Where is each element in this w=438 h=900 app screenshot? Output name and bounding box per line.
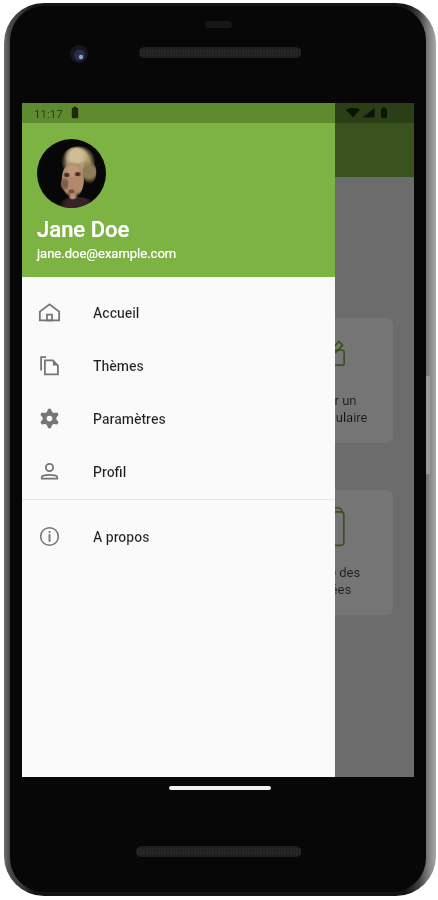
button[interactable]: A propos <box>22 510 335 563</box>
staticText: A propos <box>93 529 150 545</box>
staticText: 11:17 <box>34 107 63 120</box>
staticText: Paramètres <box>93 411 166 427</box>
button[interactable]: Thèmes <box>22 339 335 392</box>
staticText: Accueil <box>93 305 140 321</box>
button[interactable]: Paramètres <box>22 392 335 445</box>
button[interactable]: Accueil <box>22 286 335 339</box>
staticText: entrées <box>308 582 352 597</box>
button[interactable]: Liste des <box>45 490 393 615</box>
staticText: Liste des <box>308 565 361 580</box>
button[interactable]: Profile photo <box>37 139 106 208</box>
staticText: jane.doe@example.com <box>37 246 177 261</box>
staticText: Jane Doe <box>37 217 130 243</box>
staticText: formulaire <box>308 410 368 425</box>
button[interactable]: Profil <box>22 445 335 498</box>
staticText: Profil <box>93 464 127 480</box>
staticText: Créer un <box>308 393 357 408</box>
button[interactable]: Créer un <box>45 318 393 443</box>
staticText: Thèmes <box>93 358 144 374</box>
